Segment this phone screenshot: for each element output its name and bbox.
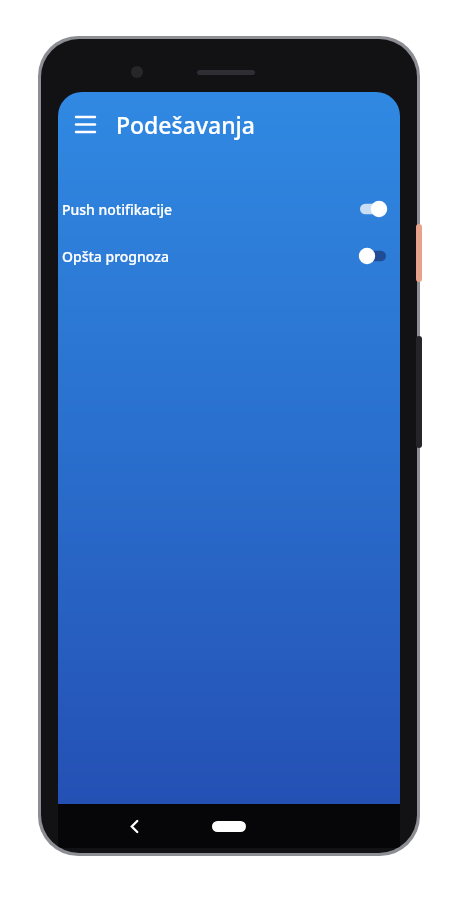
button[interactable]: Push notifikacije xyxy=(58,194,400,224)
staticText: Podešavanja xyxy=(116,109,255,140)
button[interactable]: Open navigation menu xyxy=(64,103,106,145)
staticText: Opšta prognoza xyxy=(62,247,169,266)
button[interactable]: Opšta prognoza xyxy=(58,241,400,271)
staticText: Push notifikacije xyxy=(62,200,173,219)
button[interactable]: Back xyxy=(112,804,156,848)
button[interactable]: Home xyxy=(212,821,246,832)
